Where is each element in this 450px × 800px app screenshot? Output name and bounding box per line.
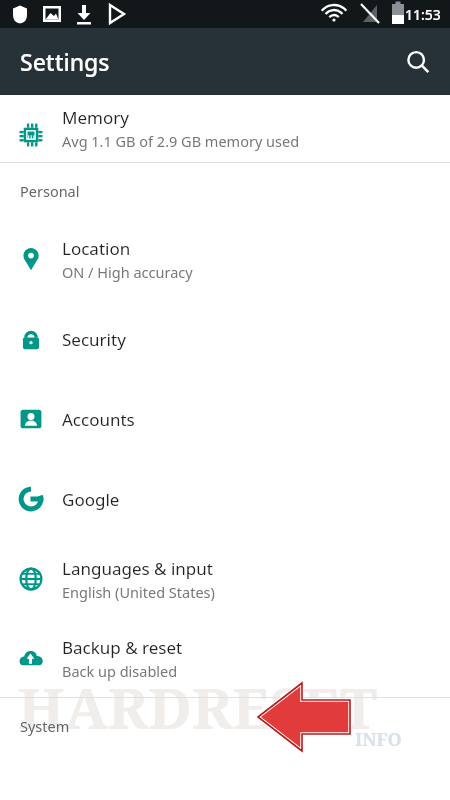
staticText: Backup & reset bbox=[62, 636, 183, 659]
button[interactable]: Security bbox=[0, 299, 450, 379]
button[interactable]: Accounts bbox=[0, 379, 450, 459]
staticText: Settings bbox=[20, 46, 110, 77]
button[interactable]: Search bbox=[394, 38, 442, 86]
staticText: Personal bbox=[20, 181, 80, 201]
staticText: Back up disabled bbox=[62, 661, 178, 681]
staticText: 11:53 bbox=[405, 5, 441, 24]
staticText: Languages & input bbox=[62, 557, 213, 580]
staticText: INFO bbox=[355, 727, 402, 752]
staticText: English (United States) bbox=[62, 582, 215, 602]
button[interactable]: Location bbox=[0, 219, 450, 299]
staticText: Google bbox=[62, 488, 120, 511]
staticText: Security bbox=[62, 328, 126, 351]
staticText: Location bbox=[62, 237, 131, 260]
staticText: ON / High accuracy bbox=[62, 262, 193, 282]
button[interactable]: Memory bbox=[0, 95, 450, 162]
button[interactable]: Backup & reset bbox=[0, 619, 450, 697]
staticText: Memory bbox=[62, 106, 129, 129]
staticText: Avg 1.1 GB of 2.9 GB memory used bbox=[62, 131, 300, 151]
button[interactable]: Google bbox=[0, 459, 450, 539]
staticText: HARDRESET bbox=[18, 668, 378, 746]
staticText: System bbox=[20, 716, 70, 736]
button[interactable]: Languages & input bbox=[0, 539, 450, 619]
staticText: Accounts bbox=[62, 408, 135, 431]
